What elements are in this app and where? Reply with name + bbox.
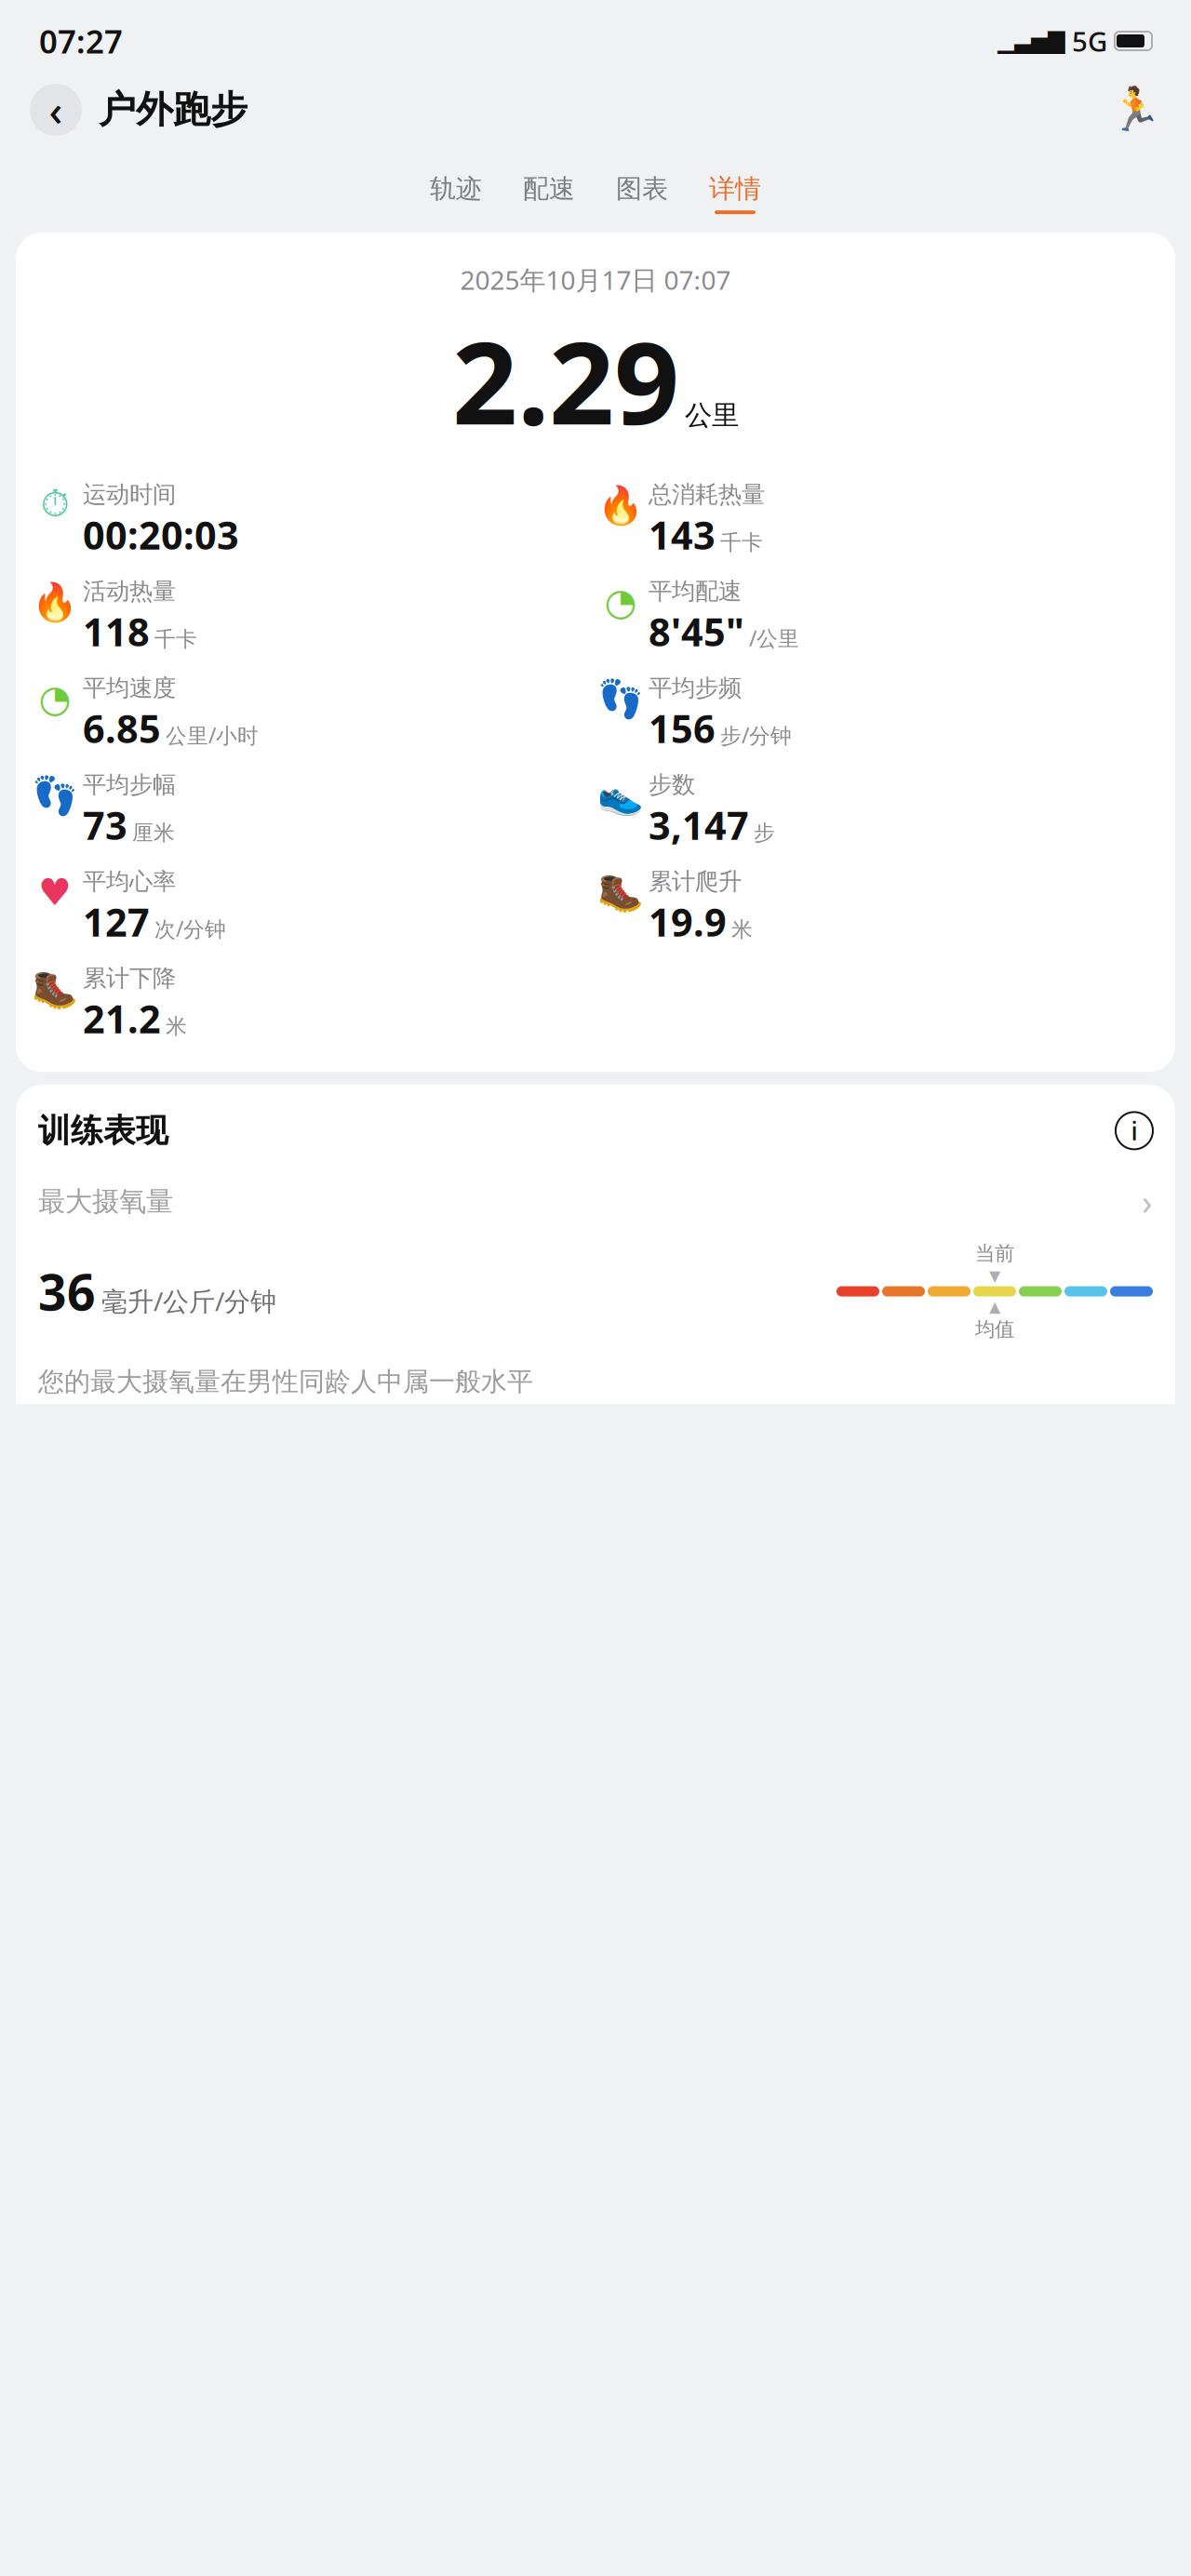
staticText: 🔥 bbox=[597, 484, 644, 526]
staticText: 🥾 bbox=[32, 968, 78, 1010]
staticText: 👣 bbox=[597, 677, 644, 720]
button[interactable]: 运动类型 bbox=[1109, 84, 1161, 136]
staticText: 👣 bbox=[32, 774, 78, 817]
staticText: ⏱ bbox=[40, 487, 69, 523]
staticText: 127 bbox=[83, 896, 150, 947]
staticText: 毫升/公斤/分钟 bbox=[101, 1284, 276, 1318]
staticText: 公里/小时 bbox=[166, 721, 259, 749]
staticText: 🥾 bbox=[597, 871, 644, 913]
staticText: 累计下降 bbox=[83, 964, 176, 993]
staticText: 19.9 bbox=[649, 896, 727, 947]
staticText: 5G bbox=[1072, 23, 1107, 59]
staticText: 步 bbox=[754, 820, 775, 846]
staticText: 平均心率 bbox=[83, 867, 176, 896]
staticText: 21.2 bbox=[83, 993, 161, 1044]
staticText: 当前 bbox=[975, 1241, 1014, 1266]
staticText: 🔥 bbox=[32, 581, 78, 623]
staticText: 2.29 bbox=[452, 304, 679, 456]
staticText: 73 bbox=[83, 799, 127, 850]
staticText: 步数 bbox=[649, 770, 695, 799]
staticText: 143 bbox=[649, 509, 716, 560]
staticText: 次/分钟 bbox=[154, 915, 226, 943]
button[interactable]: 返回 bbox=[30, 84, 82, 136]
staticText: 图表 bbox=[616, 173, 668, 205]
staticText: ▲ bbox=[989, 1298, 1000, 1315]
staticText: ‹ bbox=[49, 82, 63, 138]
button[interactable]: 轨迹 bbox=[422, 173, 489, 214]
staticText: 步/分钟 bbox=[720, 721, 792, 749]
staticText: 156 bbox=[649, 703, 716, 754]
staticText: 118 bbox=[83, 606, 150, 657]
staticText: 3,147 bbox=[649, 799, 749, 850]
staticText: ♥ bbox=[38, 871, 72, 913]
staticText: 👟 bbox=[597, 774, 644, 817]
staticText: 您的最大摄氧量在男性同龄人中属一般水平 bbox=[38, 1366, 533, 1398]
staticText: 总消耗热量 bbox=[649, 480, 765, 509]
staticText: 千卡 bbox=[720, 530, 763, 555]
staticText: 均值 bbox=[975, 1317, 1014, 1341]
button[interactable]: 图表 bbox=[609, 173, 676, 214]
staticText: 累计爬升 bbox=[649, 867, 742, 896]
button[interactable]: 详情 bbox=[702, 173, 769, 214]
staticText: 00:20:03 bbox=[83, 509, 239, 560]
staticText: 2025年10月17日 07:07 bbox=[460, 262, 731, 297]
staticText: ◔ bbox=[39, 678, 71, 720]
staticText: 07:27 bbox=[39, 20, 123, 62]
staticText: 活动热量 bbox=[83, 577, 176, 606]
staticText: 米 bbox=[166, 1013, 187, 1039]
staticText: ▼ bbox=[989, 1268, 1000, 1284]
staticText: 米 bbox=[731, 917, 753, 942]
staticText: ◔ bbox=[604, 581, 637, 623]
staticText: /公里 bbox=[749, 624, 799, 652]
staticText: 户外跑步 bbox=[99, 87, 248, 133]
staticText: 平均步频 bbox=[649, 674, 742, 703]
staticText: i bbox=[1131, 1114, 1137, 1147]
staticText: 千卡 bbox=[154, 626, 197, 652]
staticText: 配速 bbox=[523, 173, 575, 205]
staticText: ▁▃▅▇ bbox=[997, 28, 1064, 54]
staticText: 公里 bbox=[685, 399, 739, 432]
button[interactable]: 说明 bbox=[1116, 1112, 1153, 1149]
button[interactable]: 配速 bbox=[515, 173, 582, 214]
staticText: 训练表现 bbox=[38, 1111, 168, 1151]
staticText: 平均速度 bbox=[83, 674, 176, 703]
staticText: 最大摄氧量 bbox=[38, 1185, 173, 1218]
staticText: 8'45" bbox=[649, 606, 744, 657]
staticText: 厘米 bbox=[132, 820, 175, 846]
staticText: 🏃 bbox=[1109, 86, 1161, 134]
staticText: 平均步幅 bbox=[83, 770, 176, 799]
staticText: 详情 bbox=[709, 173, 761, 205]
staticText: › bbox=[1142, 1178, 1153, 1225]
staticText: 轨迹 bbox=[430, 173, 482, 205]
staticText: 运动时间 bbox=[83, 480, 176, 509]
button[interactable]: 最大摄氧量 bbox=[38, 1151, 1153, 1225]
staticText: 36 bbox=[38, 1258, 96, 1324]
staticText: 平均配速 bbox=[649, 577, 742, 606]
staticText: 6.85 bbox=[83, 703, 161, 754]
